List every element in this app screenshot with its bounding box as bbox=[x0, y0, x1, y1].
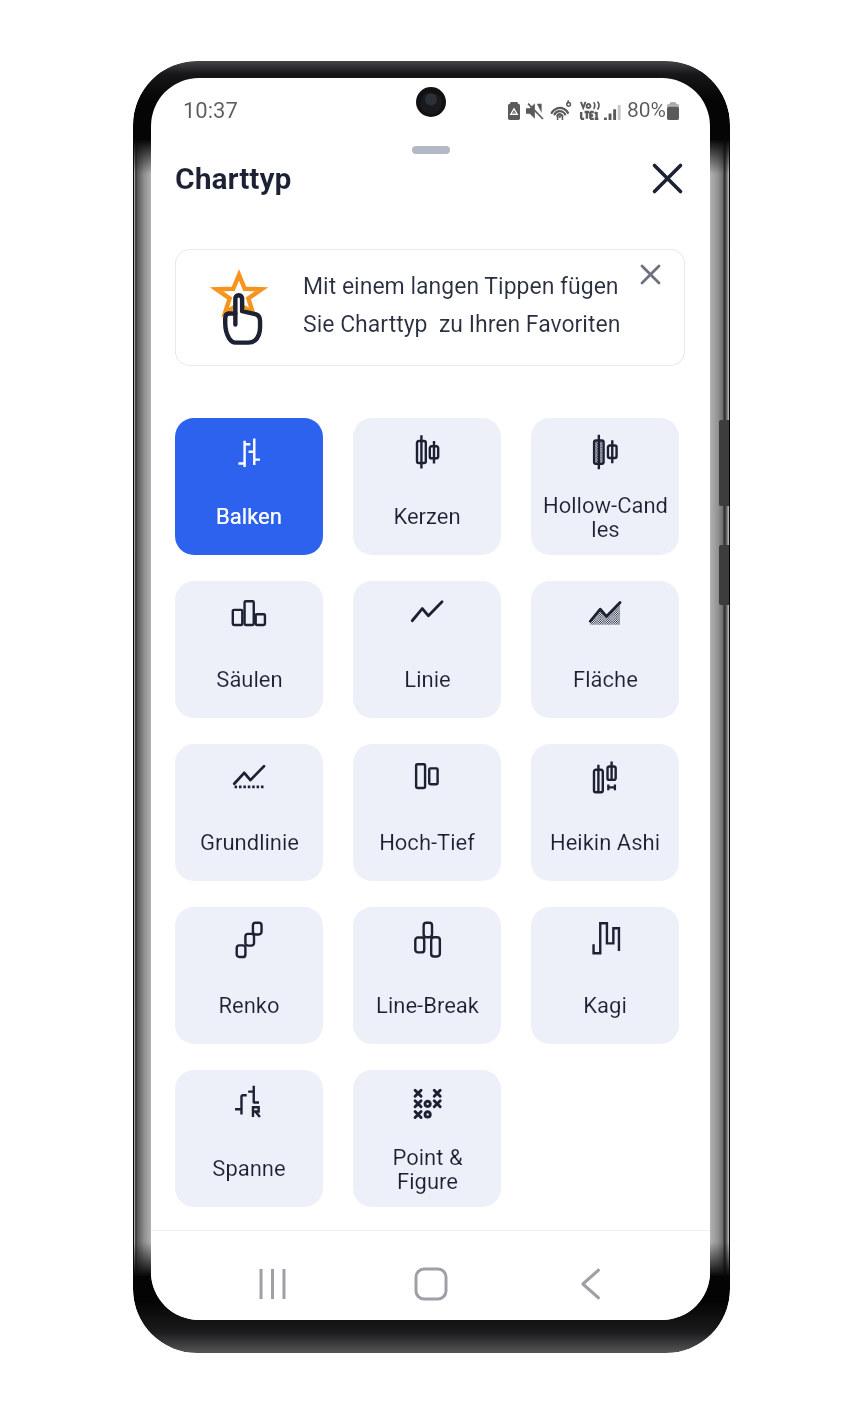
button[interactable]: Fläche bbox=[531, 581, 679, 718]
button[interactable]: Säulen bbox=[175, 581, 323, 718]
staticText: Kagi bbox=[583, 993, 627, 1019]
staticText: 10:37 bbox=[183, 98, 238, 124]
button[interactable]: Linie bbox=[353, 581, 501, 718]
button[interactable]: Spanne bbox=[175, 1070, 323, 1207]
button[interactable]: Grundlinie bbox=[175, 744, 323, 881]
button[interactable]: Zuletzt verwendet bbox=[241, 1253, 303, 1315]
button[interactable]: Hollow-Cand les bbox=[531, 418, 679, 555]
button[interactable]: Balken bbox=[175, 418, 323, 555]
button[interactable]: Mit einem langen Tippen fügen bbox=[175, 249, 685, 366]
staticText: Charttyp bbox=[175, 161, 292, 196]
staticText: Hoch-Tief bbox=[379, 830, 475, 856]
button[interactable]: Kagi bbox=[531, 907, 679, 1044]
staticText: Point & Figure bbox=[392, 1145, 463, 1194]
staticText: Hollow-Cand les bbox=[543, 493, 668, 542]
staticText: Spanne bbox=[212, 1156, 286, 1182]
button[interactable]: Point & Figure bbox=[353, 1070, 501, 1207]
staticText: Grundlinie bbox=[200, 830, 299, 856]
button[interactable]: Renko bbox=[175, 907, 323, 1044]
staticText: Line-Break bbox=[376, 993, 479, 1019]
staticText: Heikin Ashi bbox=[550, 830, 660, 856]
button[interactable]: Startseite bbox=[400, 1253, 462, 1315]
button[interactable]: Schließen bbox=[645, 156, 690, 201]
staticText: Mit einem langen Tippen fügen bbox=[303, 273, 619, 300]
button[interactable]: Hoch-Tief bbox=[353, 744, 501, 881]
staticText: Säulen bbox=[216, 667, 283, 693]
staticText: Fläche bbox=[573, 667, 638, 693]
staticText: Kerzen bbox=[393, 504, 461, 530]
button[interactable]: Kerzen bbox=[353, 418, 501, 555]
button[interactable]: Heikin Ashi bbox=[531, 744, 679, 881]
button[interactable]: Line-Break bbox=[353, 907, 501, 1044]
button[interactable]: Hinweis schließen bbox=[630, 254, 670, 294]
staticText: 80% bbox=[627, 98, 666, 123]
staticText: Sie Charttyp zu Ihren Favoriten bbox=[303, 311, 621, 338]
staticText: Balken bbox=[216, 504, 282, 530]
staticText: Linie bbox=[404, 667, 451, 693]
staticText: Renko bbox=[218, 993, 280, 1019]
button[interactable]: Zurück bbox=[559, 1253, 621, 1315]
